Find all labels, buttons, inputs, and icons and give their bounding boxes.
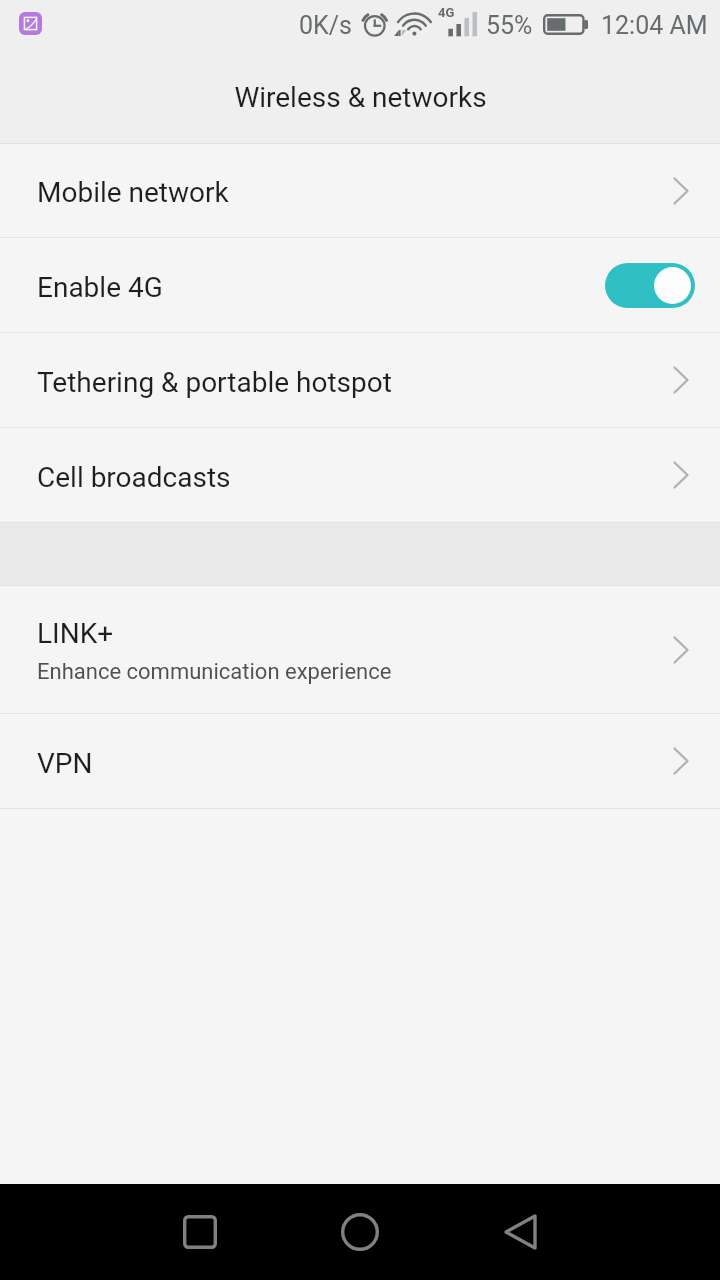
staticText: LINK+ <box>37 617 114 650</box>
button[interactable]: Cell broadcasts <box>0 428 720 522</box>
staticText: Tethering & portable hotspot <box>37 366 392 399</box>
button[interactable]: Recent apps <box>160 1184 240 1280</box>
button[interactable]: Mobile network <box>0 144 720 237</box>
button[interactable]: VPN <box>0 714 720 808</box>
staticText: Cell broadcasts <box>37 461 231 494</box>
button[interactable]: Enable 4G <box>0 238 720 332</box>
staticText: 12:04 AM <box>601 11 708 40</box>
staticText: Wireless & networks <box>234 81 487 114</box>
staticText: Mobile network <box>37 176 229 209</box>
other: Enable 4G toggle <box>605 263 695 308</box>
staticText: Enable 4G <box>37 271 605 304</box>
button[interactable]: LINK+ <box>0 586 720 713</box>
staticText: Enhance communication experience <box>37 659 392 685</box>
button[interactable]: Home <box>320 1184 400 1280</box>
button[interactable]: Back <box>480 1184 560 1280</box>
staticText: 4G <box>438 5 455 20</box>
button[interactable]: Tethering & portable hotspot <box>0 333 720 427</box>
staticText: 0K/s <box>299 11 352 40</box>
staticText: 55% <box>486 11 533 40</box>
staticText: VPN <box>37 747 93 780</box>
